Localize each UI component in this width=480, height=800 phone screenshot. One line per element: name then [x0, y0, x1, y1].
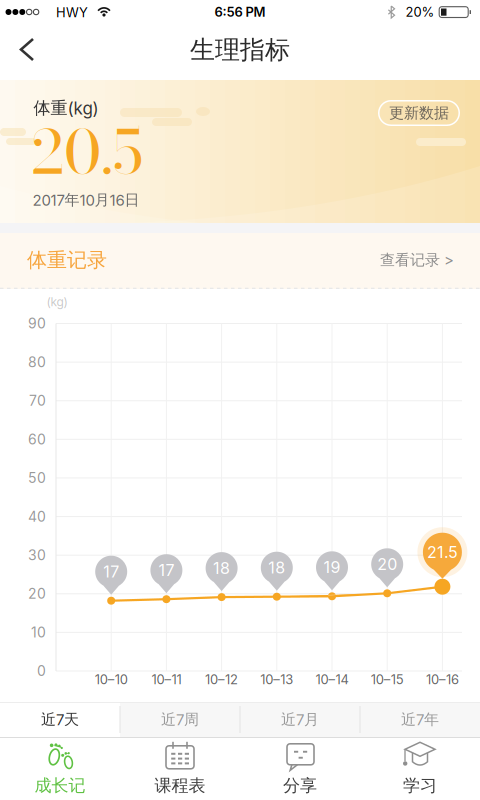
button[interactable]: 分享: [240, 737, 360, 800]
staticText: 18: [213, 558, 230, 578]
staticText: 近7年: [401, 710, 439, 729]
staticText: 70: [29, 392, 46, 409]
staticText: 60: [28, 431, 46, 448]
staticText: 近7周: [161, 710, 199, 729]
staticText: 19: [323, 558, 340, 577]
staticText: 20%: [405, 4, 434, 20]
button[interactable]: 学习: [360, 737, 480, 800]
staticText: 10: [31, 624, 46, 641]
staticText: 30: [28, 547, 46, 564]
button[interactable]: 课程表: [120, 737, 240, 800]
staticText: 体重(kg): [33, 97, 98, 119]
button[interactable]: 查看记录 >: [374, 245, 460, 275]
staticText: 成长记: [34, 775, 85, 796]
staticText: 分享: [283, 775, 317, 796]
staticText: 2017年10月16日: [32, 191, 139, 209]
staticText: 50: [28, 469, 46, 486]
staticText: 10–11: [151, 672, 181, 687]
staticText: 学习: [403, 775, 437, 796]
button[interactable]: 近7月: [240, 702, 360, 737]
staticText: 近7月: [281, 710, 319, 729]
staticText: 6:56 PM: [214, 4, 265, 20]
staticText: 查看记录 >: [380, 251, 454, 269]
button[interactable]: 近7年: [360, 702, 480, 737]
staticText: 21.5: [427, 542, 458, 562]
button[interactable]: 近7天: [0, 702, 120, 737]
button[interactable]: 更新数据: [378, 100, 460, 126]
staticText: 10–13: [260, 672, 293, 687]
staticText: 10–15: [371, 672, 404, 687]
staticText: 18: [268, 558, 285, 577]
staticText: 20: [28, 585, 46, 602]
staticText: 10–10: [95, 672, 128, 687]
staticText: 10–16: [426, 672, 459, 687]
staticText: HWY: [56, 5, 88, 20]
staticText: 10–14: [315, 672, 348, 687]
staticText: 20.5: [31, 106, 143, 198]
staticText: (kg): [46, 295, 67, 309]
staticText: 40: [28, 508, 46, 525]
staticText: 课程表: [154, 775, 205, 796]
staticText: 17: [158, 560, 174, 580]
staticText: 0: [37, 662, 46, 679]
staticText: 体重记录: [27, 247, 107, 273]
staticText: 生理指标: [190, 34, 290, 66]
staticText: 90: [28, 315, 46, 332]
button[interactable]: Back: [7, 27, 46, 73]
staticText: 20: [377, 555, 397, 574]
button[interactable]: 成长记: [0, 737, 120, 800]
staticText: 近7天: [41, 710, 79, 729]
staticText: 更新数据: [389, 104, 449, 122]
button[interactable]: 近7周: [120, 702, 240, 737]
staticText: 80: [28, 354, 46, 371]
staticText: 10–12: [205, 672, 238, 687]
staticText: 17: [103, 562, 119, 581]
